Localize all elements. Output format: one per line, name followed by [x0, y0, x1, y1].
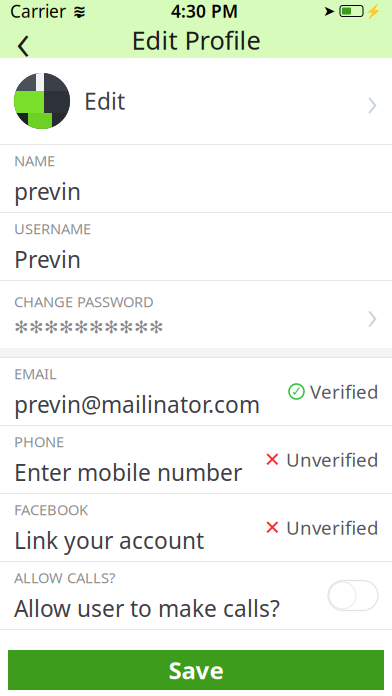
staticText: EMAIL	[14, 364, 57, 383]
staticText: ➤	[323, 3, 335, 19]
staticText: Previn	[14, 244, 81, 274]
staticText: CHANGE PASSWORD	[14, 292, 154, 311]
staticText: Edit Profile	[131, 23, 260, 57]
staticText: ‹	[16, 5, 30, 75]
staticText: ›	[367, 74, 378, 127]
staticText: ≋	[72, 2, 85, 20]
staticText: Language	[14, 648, 121, 678]
staticText: Link your account	[14, 525, 204, 555]
staticText: Unverified	[286, 515, 378, 540]
staticText: Unverified	[286, 447, 378, 472]
staticText: ✕	[264, 516, 281, 539]
staticText: 4:30 PM	[171, 0, 238, 22]
staticText: Save	[168, 654, 223, 686]
staticText: Edit	[84, 86, 125, 116]
button[interactable]: Save	[8, 650, 384, 690]
staticText: Allow user to make calls?	[14, 593, 280, 623]
staticText: ›	[369, 640, 378, 686]
staticText: ✕	[264, 448, 281, 471]
staticText: USERNAME	[14, 219, 91, 238]
staticText: Verified	[310, 379, 378, 404]
staticText: ›	[367, 288, 378, 341]
button[interactable]: Back	[0, 22, 46, 58]
staticText: ✻✻✻✻✻✻✻✻✻✻	[14, 317, 164, 337]
staticText: FACEBOOK	[14, 500, 88, 519]
staticText: Enter mobile number	[14, 457, 242, 487]
staticText: NAME	[14, 151, 55, 170]
staticText: previn	[14, 176, 81, 206]
staticText: previn@mailinator.com	[14, 389, 260, 419]
staticText: ALLOW CALLS?	[14, 568, 115, 587]
staticText: Carrier	[10, 0, 66, 22]
button[interactable]: Edit	[0, 58, 392, 144]
staticText: ✓	[291, 384, 302, 399]
button[interactable]: Allow calls toggle	[328, 580, 378, 610]
button[interactable]: CHANGE PASSWORD	[0, 281, 392, 348]
button[interactable]: Language	[0, 630, 392, 696]
staticText: ⚡	[365, 3, 382, 19]
staticText: PHONE	[14, 432, 64, 451]
